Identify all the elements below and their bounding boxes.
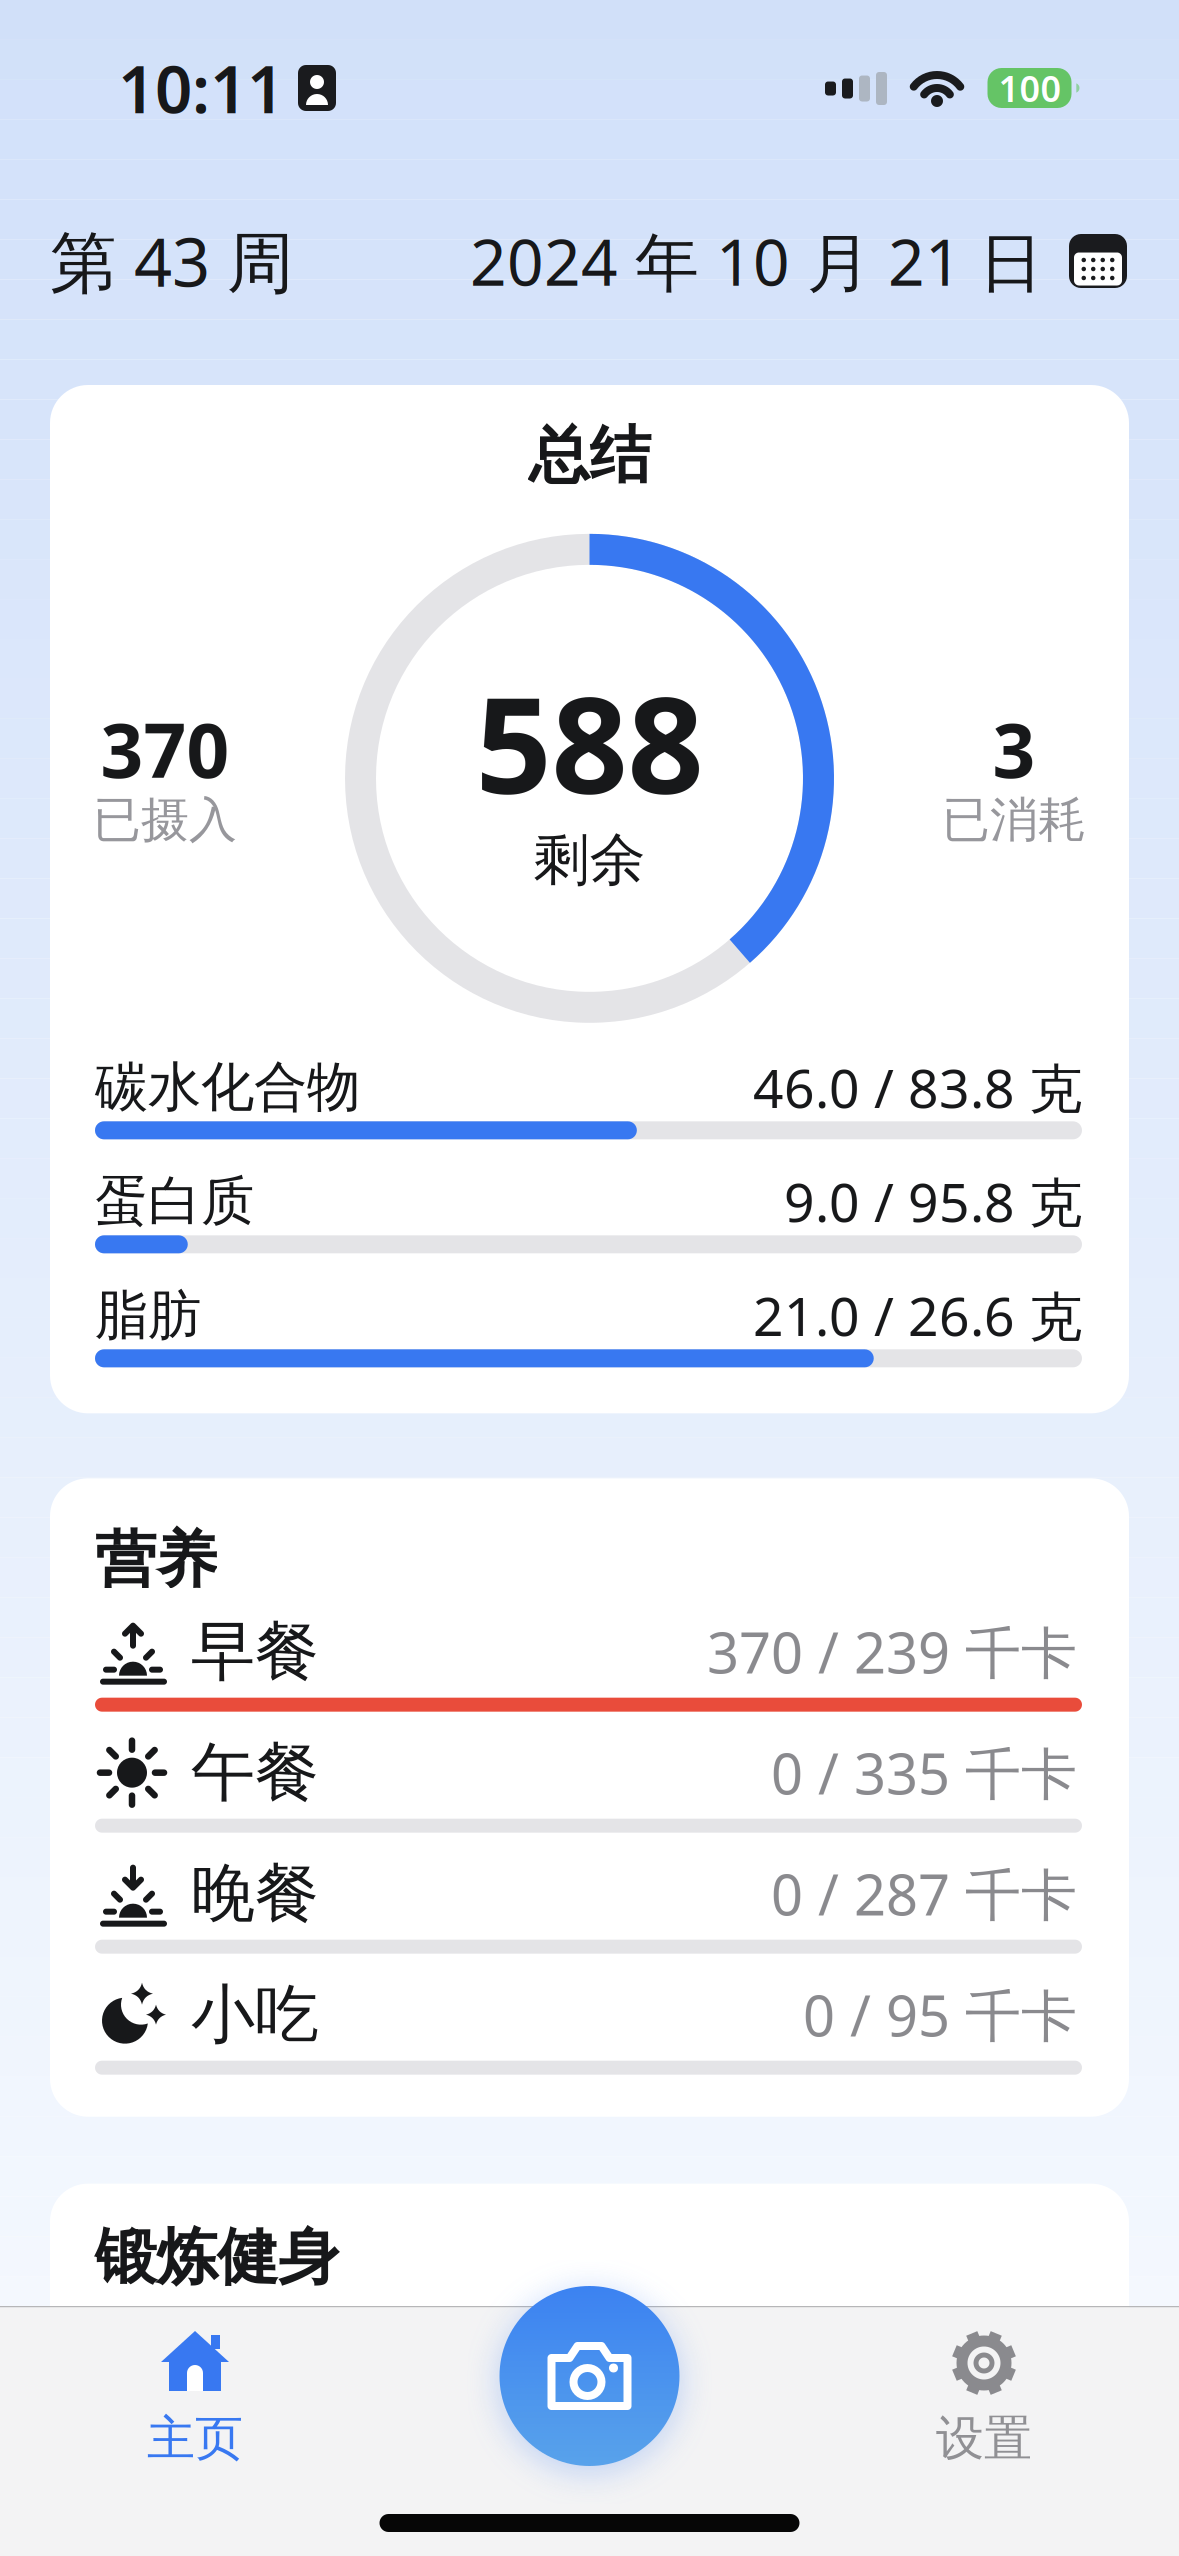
staticText: 0 / 287 千卡 bbox=[771, 1856, 1077, 1931]
button[interactable]: 小吃 bbox=[95, 1979, 1129, 2075]
button[interactable]: 主页 bbox=[118, 2329, 272, 2468]
staticText: 早餐 bbox=[191, 1612, 319, 1691]
button[interactable]: 早餐 bbox=[95, 1616, 1129, 1712]
staticText: 370 bbox=[100, 699, 229, 798]
staticText: 10:11 bbox=[118, 45, 284, 131]
staticText: 370 / 239 千卡 bbox=[707, 1614, 1077, 1689]
staticText: 588 bbox=[475, 653, 703, 830]
staticText: 21.0 / 26.6 克 bbox=[753, 1280, 1082, 1351]
staticText: 设置 bbox=[936, 2409, 1032, 2468]
staticText: 第 43 周 bbox=[50, 217, 294, 305]
staticText: 脂肪 bbox=[95, 1283, 201, 1348]
button[interactable]: 设置 bbox=[907, 2329, 1061, 2468]
staticText: 蛋白质 bbox=[95, 1169, 254, 1234]
staticText: 9.0 / 95.8 克 bbox=[784, 1166, 1082, 1237]
staticText: 主页 bbox=[147, 2409, 243, 2468]
staticText: 营养 bbox=[95, 1522, 217, 1598]
staticText: 晚餐 bbox=[191, 1854, 319, 1933]
staticText: 46.0 / 83.8 克 bbox=[753, 1052, 1082, 1123]
button[interactable]: 选择日期 bbox=[1069, 234, 1127, 288]
button[interactable]: 晚餐 bbox=[95, 1858, 1129, 1954]
staticText: 锻炼健身 bbox=[95, 2220, 339, 2295]
staticText: 小吃 bbox=[191, 1975, 319, 2054]
staticText: 已消耗 bbox=[942, 790, 1086, 849]
staticText: 100 bbox=[998, 64, 1061, 112]
button[interactable]: 午餐 bbox=[95, 1737, 1129, 1833]
button[interactable]: 拍照记录 bbox=[499, 2286, 679, 2466]
staticText: 0 / 335 千卡 bbox=[771, 1735, 1077, 1810]
staticText: 3 bbox=[992, 699, 1035, 798]
staticText: 已摄入 bbox=[93, 790, 237, 849]
staticText: 总结 bbox=[528, 418, 650, 493]
staticText: 0 / 95 千卡 bbox=[803, 1977, 1077, 2052]
staticText: 午餐 bbox=[191, 1733, 319, 1812]
staticText: 2024 年 10 月 21 日 bbox=[470, 218, 1043, 303]
staticText: 碳水化合物 bbox=[95, 1055, 360, 1120]
staticText: 剩余 bbox=[533, 825, 645, 894]
